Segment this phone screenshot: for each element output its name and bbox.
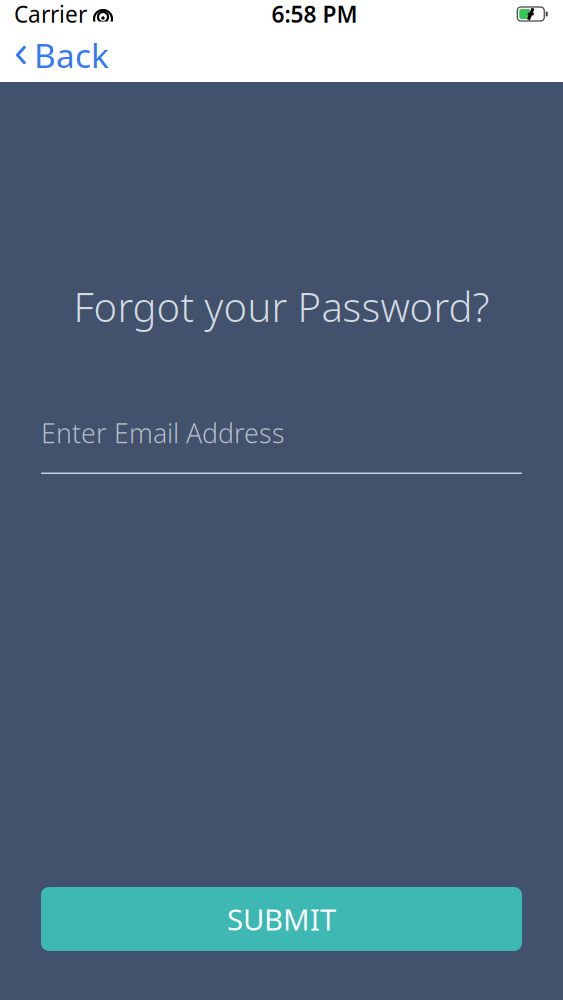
staticText: Carrier xyxy=(14,0,87,29)
staticText: SUBMIT xyxy=(227,899,336,938)
staticText: Back xyxy=(34,33,109,77)
button[interactable]: Back xyxy=(0,28,119,82)
staticText: Enter Email Address xyxy=(41,415,285,450)
button[interactable]: SUBMIT xyxy=(41,887,522,951)
staticText: Forgot your Password? xyxy=(73,280,489,333)
staticText xyxy=(87,0,93,29)
staticText: 6:58 PM xyxy=(271,0,357,29)
